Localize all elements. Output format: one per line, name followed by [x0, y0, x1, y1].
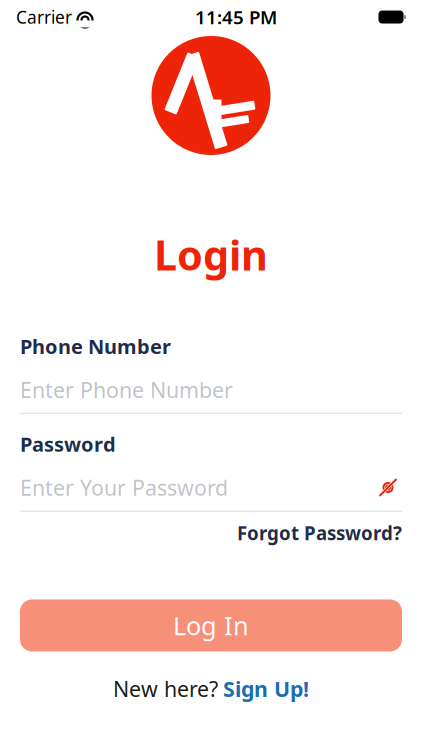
staticText: New here?	[113, 674, 218, 703]
staticText: 11:45 PM	[195, 5, 277, 29]
staticText: Phone Number	[20, 333, 171, 359]
staticText: Enter Your Password	[20, 473, 228, 502]
button[interactable]: Forgot Password?	[237, 521, 402, 545]
staticText: Enter Phone Number	[20, 375, 233, 404]
staticText: Password	[20, 431, 116, 457]
staticText: Log In	[173, 609, 249, 642]
button[interactable]: Log In	[20, 599, 402, 651]
staticText: Carrier	[16, 5, 72, 28]
staticText: Login	[154, 227, 268, 282]
staticText: Forgot Password?	[237, 521, 402, 545]
button[interactable]: Show password	[374, 476, 402, 498]
staticText: Sign Up!	[223, 674, 309, 703]
button[interactable]: Sign Up!	[223, 674, 309, 703]
